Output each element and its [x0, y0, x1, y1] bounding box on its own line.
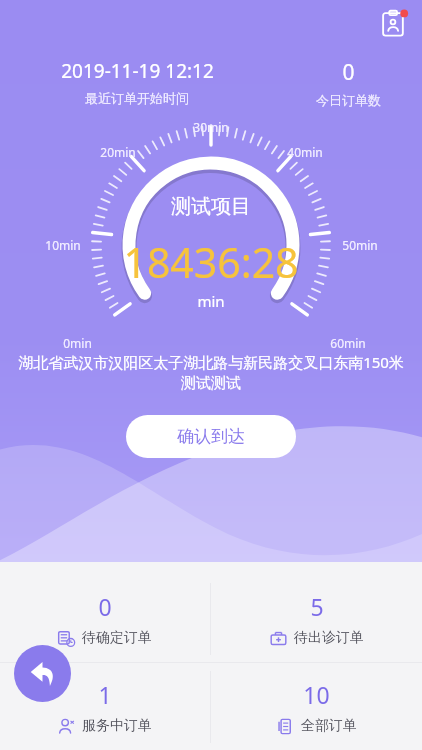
staticText: 10 — [303, 679, 330, 710]
staticText: 湖北省武汉市汉阳区太子湖北路与新民路交叉口东南150米测试测试 — [14, 352, 408, 393]
button[interactable]: 1 — [0, 663, 210, 750]
staticText: 40min — [287, 144, 323, 160]
staticText: 2019-11-19 12:12 — [61, 58, 214, 84]
button[interactable]: 10 — [211, 663, 422, 750]
staticText: 最近订单开始时间 — [85, 90, 189, 106]
staticText: 0min — [63, 335, 92, 351]
button[interactable]: Orders — [377, 7, 411, 41]
staticText: 服务中订单 — [82, 717, 152, 735]
staticText: 10min — [45, 237, 81, 253]
staticText: 确认到达 — [177, 426, 245, 447]
staticText: 今日订单数 — [316, 92, 381, 108]
button[interactable]: 确认到达 — [126, 415, 296, 458]
staticText: 5 — [310, 591, 324, 622]
staticText: 30min — [193, 119, 229, 135]
button[interactable]: Back — [14, 645, 71, 702]
staticText: 1 — [98, 679, 112, 710]
button[interactable]: 0 — [0, 575, 210, 662]
staticText: min — [197, 291, 225, 311]
staticText: 全部订单 — [301, 717, 357, 735]
staticText: 待出诊订单 — [294, 629, 364, 647]
staticText: 18436:28 — [123, 234, 299, 290]
staticText: 0 — [98, 591, 112, 622]
button[interactable]: 5 — [211, 575, 422, 662]
staticText: 60min — [330, 335, 366, 351]
staticText: 20min — [100, 144, 136, 160]
staticText: 50min — [342, 237, 378, 253]
staticText: 0 — [342, 58, 355, 87]
staticText: 待确定订单 — [82, 629, 152, 647]
staticText: 测试项目 — [171, 194, 251, 219]
